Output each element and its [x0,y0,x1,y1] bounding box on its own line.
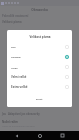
staticText: Velké [11,66,18,69]
button[interactable]: Recent apps [57,131,67,140]
button[interactable]: Velikost písma [2,20,22,24]
staticText: Noční režim [2,120,18,124]
staticText: Normální [11,56,21,59]
staticText: Pokročilé nastavení [2,14,29,18]
staticText: Malé [11,46,16,49]
button[interactable]: Pokročilé nastavení [2,14,29,18]
staticText: Velmi velké [11,75,27,79]
button[interactable]: Back [12,131,22,140]
staticText: Velikost písma [2,20,22,24]
staticText: Obrazovka [31,8,48,12]
button[interactable]: Malé [7,42,72,52]
staticText: Zrušit [36,98,43,101]
button[interactable]: Jas Adaptivní jas obrazovky [2,112,40,116]
button[interactable]: Extra velké [7,82,72,92]
button[interactable]: Home [35,131,45,140]
button[interactable]: Velmi velké [7,72,72,82]
staticText: Jas Adaptivní jas obrazovky [2,112,40,116]
button[interactable]: Zrušit [32,95,47,104]
staticText: Nikdy se automaticky nezapne [2,125,35,128]
button[interactable]: Velké [7,62,72,72]
staticText: Extra velké [11,85,28,89]
button[interactable]: Noční režim [2,120,18,124]
button[interactable]: Normální [7,52,72,62]
staticText: Velikost písma [29,35,51,39]
